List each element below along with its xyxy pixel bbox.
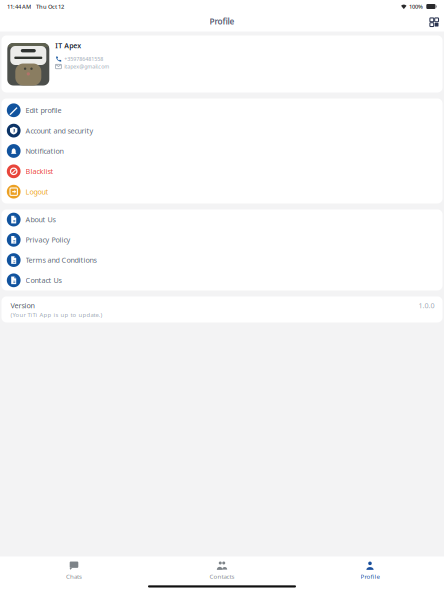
button[interactable]: About Us bbox=[1, 209, 442, 230]
staticText: Edit profile bbox=[26, 105, 62, 115]
staticText: 1.0.0 bbox=[418, 300, 434, 310]
staticText: +359786481558 bbox=[64, 55, 103, 62]
staticText: 100% bbox=[409, 3, 423, 10]
staticText: Account and security bbox=[26, 126, 94, 135]
button[interactable]: Contact Us bbox=[1, 270, 442, 290]
staticText: Privacy Policy bbox=[26, 235, 71, 245]
button[interactable]: Scan QR code bbox=[423, 14, 444, 30]
staticText: Contact Us bbox=[26, 275, 62, 285]
staticText: itapex@gmail.com bbox=[64, 63, 109, 70]
staticText: Profile bbox=[209, 16, 234, 27]
button[interactable]: Terms and Conditions bbox=[1, 250, 442, 270]
button[interactable]: Logout bbox=[1, 181, 442, 202]
staticText: Chats bbox=[66, 572, 82, 581]
staticText: IT Apex bbox=[55, 41, 81, 50]
staticText: 11:44 AM bbox=[7, 3, 31, 10]
staticText: Version bbox=[10, 300, 34, 310]
staticText: Logout bbox=[26, 187, 49, 197]
staticText: Terms and Conditions bbox=[26, 255, 97, 265]
staticText: Profile bbox=[360, 572, 379, 581]
staticText: Contacts bbox=[209, 572, 234, 581]
button[interactable]: Privacy Policy bbox=[1, 230, 442, 250]
staticText: Thu Oct 12 bbox=[36, 3, 64, 10]
button[interactable]: Edit profile bbox=[1, 100, 442, 120]
button[interactable]: Contacts bbox=[148, 561, 296, 584]
button[interactable]: IT Apex bbox=[1, 35, 442, 92]
button[interactable]: Chats bbox=[0, 561, 148, 584]
button[interactable]: Notification bbox=[1, 141, 442, 161]
staticText: (Your TiTi App is up to update.) bbox=[10, 311, 102, 319]
staticText: Blacklist bbox=[26, 166, 54, 176]
button[interactable]: Profile bbox=[296, 561, 444, 584]
staticText: About Us bbox=[26, 215, 56, 224]
button[interactable]: Account and security bbox=[1, 120, 442, 141]
button[interactable]: Blacklist bbox=[1, 161, 442, 182]
staticText: Notification bbox=[26, 146, 64, 156]
